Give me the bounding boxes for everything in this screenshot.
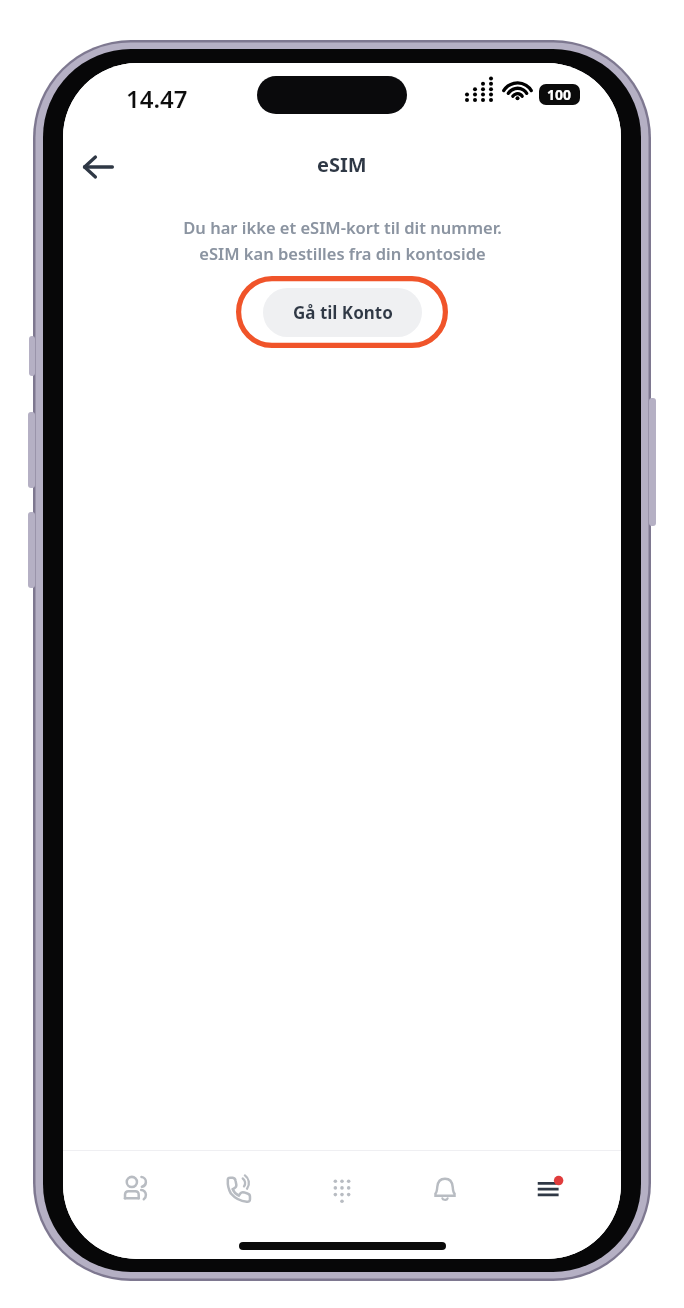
staticText: 14.47 [126,82,188,115]
staticText: eSIM kan bestilles fra din kontoside [199,242,486,264]
staticText: Gå til Konto [293,301,393,324]
button[interactable]: Calls [187,1151,290,1227]
staticText: 100 [547,85,572,104]
button[interactable]: Gå til Konto [263,288,422,337]
staticText: eSIM [317,151,367,178]
button[interactable]: Back [71,141,125,193]
button[interactable]: Dialpad [290,1151,393,1227]
staticText: Du har ikke et eSIM-kort til dit nummer. [183,216,502,238]
button[interactable]: Menu [496,1151,599,1227]
button[interactable]: Notifications [393,1151,496,1227]
button[interactable]: Contacts [85,1151,187,1227]
